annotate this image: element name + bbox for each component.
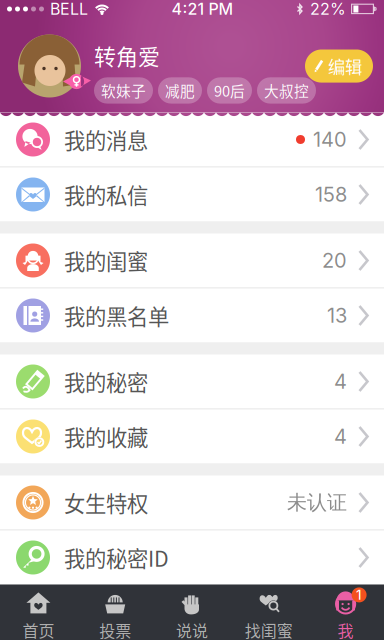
staticText: 转角爱 <box>94 39 160 71</box>
staticText: 4 <box>334 369 347 394</box>
staticText: 找闺蜜 <box>245 618 293 640</box>
button[interactable]: 女生特权 <box>0 475 384 529</box>
button[interactable]: 首页 <box>0 584 77 640</box>
staticText: 我的私信 <box>64 179 148 210</box>
staticText: 140 <box>313 127 347 152</box>
button[interactable]: 我的黑名单 <box>0 288 384 342</box>
button[interactable]: 我的收藏 <box>0 409 384 463</box>
staticText: 编辑 <box>328 53 362 79</box>
button[interactable]: 找闺蜜 <box>230 584 307 640</box>
button[interactable]: 我的私信 <box>0 167 384 221</box>
button[interactable]: 说说 <box>154 584 230 640</box>
staticText: 我的秘密ID <box>64 542 169 573</box>
button[interactable]: 我的闺蜜 <box>0 233 384 287</box>
staticText: 软妹子 <box>101 80 146 101</box>
staticText: 我的收藏 <box>64 421 148 452</box>
staticText: 4 <box>334 424 347 449</box>
staticText: 说说 <box>176 618 208 640</box>
staticText: 未认证 <box>287 490 347 515</box>
staticText: 22% <box>310 0 346 19</box>
staticText: 我 <box>338 618 354 640</box>
staticText: 投票 <box>99 618 131 640</box>
staticText: 90后 <box>214 80 245 101</box>
button[interactable]: 1 <box>307 584 384 640</box>
button[interactable]: 投票 <box>77 584 154 640</box>
staticText: BELL <box>50 0 88 19</box>
staticText: 我的黑名单 <box>64 300 169 331</box>
staticText: 我的秘密 <box>64 366 148 397</box>
button[interactable]: 我的秘密ID <box>0 530 384 584</box>
staticText: 158 <box>315 182 347 207</box>
button[interactable]: 我的消息 <box>0 112 384 166</box>
staticText: 我的消息 <box>64 124 148 155</box>
staticText: 1 <box>356 587 362 603</box>
staticText: 减肥 <box>165 80 195 101</box>
staticText: 20 <box>322 248 347 273</box>
button[interactable]: 我的秘密 <box>0 354 384 408</box>
staticText: 4:21 PM <box>171 0 233 19</box>
button[interactable]: 编辑 <box>305 49 373 83</box>
staticText: 13 <box>327 303 347 328</box>
staticText: 我的闺蜜 <box>64 245 148 276</box>
staticText: 女生特权 <box>64 487 148 518</box>
staticText: 大叔控 <box>264 80 309 101</box>
staticText: 首页 <box>22 618 54 640</box>
